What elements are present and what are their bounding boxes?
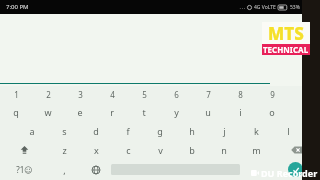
button[interactable]: , bbox=[49, 159, 80, 180]
staticText: 4 bbox=[110, 89, 115, 100]
staticText: u bbox=[205, 106, 211, 118]
button[interactable]: i bbox=[224, 102, 256, 121]
button[interactable]: k bbox=[240, 121, 272, 140]
button[interactable]: s bbox=[48, 121, 80, 140]
staticText: y bbox=[174, 106, 179, 118]
button[interactable]: 5 bbox=[128, 86, 160, 102]
staticText: g bbox=[157, 125, 163, 137]
staticText: 7:00 PM bbox=[6, 3, 29, 11]
staticText: t bbox=[142, 106, 146, 118]
staticText: 53% bbox=[290, 4, 300, 11]
staticText: 5 bbox=[142, 89, 147, 100]
staticText: s bbox=[62, 125, 67, 137]
button[interactable]: d bbox=[80, 121, 112, 140]
staticText: 9 bbox=[270, 89, 275, 100]
button[interactable]: 6 bbox=[160, 86, 192, 102]
button[interactable]: h bbox=[176, 121, 208, 140]
staticText: TECHNICAL bbox=[263, 44, 309, 55]
button[interactable]: z bbox=[48, 140, 80, 159]
button[interactable]: ?1☺ bbox=[0, 159, 49, 180]
button[interactable]: o bbox=[256, 102, 288, 121]
button[interactable]: v bbox=[144, 140, 176, 159]
button[interactable]: f bbox=[112, 121, 144, 140]
staticText: d bbox=[93, 125, 99, 137]
staticText: o bbox=[269, 106, 275, 118]
button[interactable]: a bbox=[16, 121, 48, 140]
staticText: m bbox=[252, 144, 261, 156]
button[interactable]: y bbox=[160, 102, 192, 121]
staticText: 8 bbox=[238, 89, 243, 100]
staticText: f bbox=[126, 125, 130, 137]
staticText: 7 bbox=[206, 89, 211, 100]
staticText: z bbox=[62, 144, 67, 156]
staticText: h bbox=[189, 125, 195, 137]
staticText: ?1☺ bbox=[16, 164, 33, 175]
staticText: w bbox=[44, 106, 52, 118]
button[interactable]: 8 bbox=[224, 86, 256, 102]
staticText: . bbox=[254, 164, 257, 176]
staticText: 4G VoLTE bbox=[254, 4, 276, 11]
button[interactable]: 4 bbox=[96, 86, 128, 102]
staticText: p bbox=[301, 106, 307, 118]
button[interactable]: g bbox=[144, 121, 176, 140]
staticText: n bbox=[221, 144, 227, 156]
button[interactable]: 3 bbox=[64, 86, 96, 102]
staticText: e bbox=[77, 106, 83, 118]
staticText: MTS bbox=[268, 22, 304, 44]
button[interactable]: m bbox=[240, 140, 272, 159]
button[interactable]: p bbox=[288, 102, 320, 121]
staticText: a bbox=[29, 125, 35, 137]
button[interactable]: Enter bbox=[288, 162, 303, 177]
button[interactable]: . bbox=[240, 159, 271, 180]
staticText: ⋯ bbox=[239, 4, 245, 11]
staticText: 3 bbox=[78, 89, 83, 100]
button[interactable]: Backspace bbox=[272, 140, 320, 159]
staticText: 6 bbox=[174, 89, 179, 100]
button[interactable]: t bbox=[128, 102, 160, 121]
staticText: b bbox=[189, 144, 195, 156]
button[interactable]: j bbox=[208, 121, 240, 140]
staticText: 1 bbox=[14, 89, 19, 100]
button[interactable]: x bbox=[80, 140, 112, 159]
button[interactable]: Shift bbox=[0, 140, 48, 159]
button[interactable]: e bbox=[64, 102, 96, 121]
button[interactable]: b bbox=[176, 140, 208, 159]
staticText: , bbox=[63, 164, 66, 176]
staticText: q bbox=[13, 106, 19, 118]
staticText: DU Recorder bbox=[261, 167, 318, 179]
button[interactable]: 0 bbox=[288, 86, 320, 102]
button[interactable]: r bbox=[96, 102, 128, 121]
button[interactable]: 7 bbox=[192, 86, 224, 102]
button[interactable]: u bbox=[192, 102, 224, 121]
staticText: k bbox=[254, 125, 259, 137]
staticText: r bbox=[110, 106, 114, 118]
button[interactable]: l bbox=[272, 121, 304, 140]
button[interactable]: n bbox=[208, 140, 240, 159]
staticText: v bbox=[158, 144, 163, 156]
button[interactable]: q bbox=[0, 102, 32, 121]
staticText: 2 bbox=[46, 89, 51, 100]
staticText: j bbox=[223, 125, 226, 137]
button[interactable]: c bbox=[112, 140, 144, 159]
staticText: i bbox=[239, 106, 242, 118]
staticText: c bbox=[126, 144, 131, 156]
button[interactable]: 2 bbox=[32, 86, 64, 102]
button[interactable]: 1 bbox=[0, 86, 32, 102]
button[interactable]: Change language bbox=[80, 159, 111, 180]
button[interactable]: 9 bbox=[256, 86, 288, 102]
staticText: l bbox=[287, 125, 290, 137]
button[interactable]: w bbox=[32, 102, 64, 121]
staticText: x bbox=[94, 144, 99, 156]
